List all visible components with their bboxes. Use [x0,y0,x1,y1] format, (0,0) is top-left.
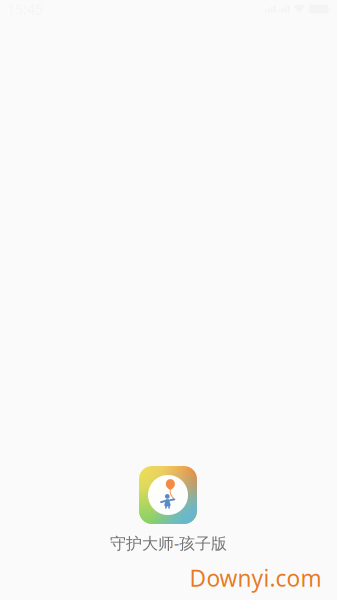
staticText: Downyi.com [189,563,321,593]
staticText: 守护大师-孩子版 [110,532,227,554]
